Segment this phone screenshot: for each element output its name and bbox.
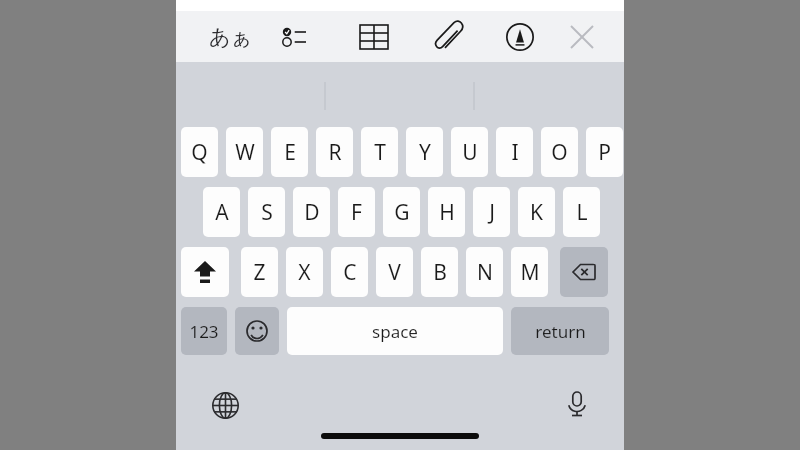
button[interactable]: J [473, 187, 510, 237]
staticText: F [351, 198, 362, 227]
button[interactable]: I [496, 127, 533, 177]
staticText: P [598, 138, 611, 167]
button[interactable]: Emoji [235, 307, 279, 355]
button[interactable]: Change keyboard [204, 384, 246, 426]
button[interactable]: H [428, 187, 465, 237]
button[interactable]: return [511, 307, 609, 355]
button[interactable]: X [286, 247, 323, 297]
button[interactable]: Y [406, 127, 443, 177]
staticText: G [394, 198, 410, 227]
button[interactable]: U [451, 127, 488, 177]
staticText: 123 [189, 320, 219, 343]
button[interactable]: W [226, 127, 263, 177]
staticText: あぁ [209, 24, 252, 50]
button[interactable]: Markup [496, 15, 544, 59]
button[interactable]: N [466, 247, 503, 297]
staticText: O [551, 138, 568, 167]
button[interactable]: E [271, 127, 308, 177]
staticText: H [439, 198, 455, 227]
staticText: I [511, 138, 519, 167]
button[interactable]: Dictate [556, 383, 598, 425]
button[interactable]: space [287, 307, 503, 355]
button[interactable]: Q [181, 127, 218, 177]
button[interactable]: V [376, 247, 413, 297]
button[interactable]: B [421, 247, 458, 297]
staticText: J [489, 198, 495, 227]
button[interactable]: P [586, 127, 623, 177]
staticText: M [520, 258, 540, 287]
button[interactable]: S [248, 187, 285, 237]
button[interactable]: Backspace [560, 247, 608, 297]
button[interactable]: Attach [424, 15, 472, 59]
staticText: A [215, 198, 229, 227]
staticText: E [284, 138, 296, 167]
button[interactable]: D [293, 187, 330, 237]
staticText: K [530, 198, 543, 227]
button[interactable]: 123 [181, 307, 227, 355]
button[interactable]: M [511, 247, 548, 297]
button[interactable]: Close [556, 15, 608, 59]
staticText: S [261, 198, 273, 227]
staticText: X [298, 258, 311, 287]
staticText: U [462, 138, 478, 167]
staticText: L [576, 198, 588, 227]
staticText: D [304, 198, 320, 227]
button[interactable]: Checklist [274, 15, 324, 59]
button[interactable]: Table [350, 15, 398, 59]
button[interactable]: Z [241, 247, 278, 297]
button[interactable]: G [383, 187, 420, 237]
button[interactable]: O [541, 127, 578, 177]
button[interactable]: L [563, 187, 600, 237]
button[interactable]: R [316, 127, 353, 177]
staticText: Y [419, 138, 431, 167]
staticText: return [535, 320, 586, 343]
button[interactable]: あぁ [202, 15, 258, 59]
button[interactable]: A [203, 187, 240, 237]
staticText: V [388, 258, 401, 287]
staticText: space [372, 320, 418, 343]
staticText: Q [191, 138, 208, 167]
button[interactable]: Shift [181, 247, 229, 297]
staticText: B [433, 258, 447, 287]
staticText: C [343, 258, 357, 287]
button[interactable]: T [361, 127, 398, 177]
button[interactable]: C [331, 247, 368, 297]
staticText: Z [253, 258, 266, 287]
staticText: N [477, 258, 493, 287]
button[interactable]: K [518, 187, 555, 237]
staticText: R [328, 138, 342, 167]
button[interactable]: F [338, 187, 375, 237]
staticText: T [374, 138, 386, 167]
staticText: W [235, 138, 255, 167]
